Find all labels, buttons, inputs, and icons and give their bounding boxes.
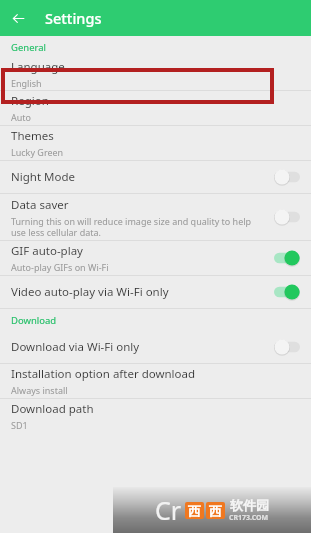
staticText: Download via Wi-Fi only xyxy=(11,339,140,355)
staticText: 软件园 xyxy=(230,497,269,513)
staticText: Download path xyxy=(11,401,94,417)
button[interactable]: Installation option after download xyxy=(0,364,311,398)
staticText: Auto-play GIFs on Wi-Fi xyxy=(11,261,109,273)
staticText: Data saver xyxy=(11,197,69,213)
staticText: Settings xyxy=(45,8,102,28)
button[interactable]: Themes xyxy=(0,126,311,160)
staticText: Lucky Green xyxy=(11,146,64,158)
button[interactable]: Toggle off xyxy=(274,169,300,185)
button[interactable]: Toggle on xyxy=(274,284,300,300)
button[interactable]: Back xyxy=(0,0,36,36)
staticText: SD1 xyxy=(11,419,28,431)
staticText: Auto xyxy=(11,111,32,123)
button[interactable]: Night Mode xyxy=(0,161,311,193)
button[interactable] xyxy=(3,70,272,102)
button[interactable]: Region xyxy=(0,91,311,125)
staticText: Download xyxy=(11,314,57,327)
staticText: General xyxy=(11,41,47,54)
staticText: Cr xyxy=(155,493,182,527)
staticText: Installation option after download xyxy=(11,366,196,382)
button[interactable]: Language xyxy=(0,58,311,90)
button[interactable]: Download via Wi-Fi only xyxy=(0,331,311,363)
staticText: Always install xyxy=(11,384,68,396)
button[interactable]: GIF auto-play xyxy=(0,241,311,275)
staticText: Night Mode xyxy=(11,169,75,185)
button[interactable]: Download path xyxy=(0,399,311,433)
staticText: Video auto-play via Wi-Fi only xyxy=(11,284,169,300)
staticText: Themes xyxy=(11,128,54,144)
staticText: 西 xyxy=(188,503,201,519)
button[interactable]: Data saver xyxy=(0,194,311,240)
button[interactable]: Toggle on xyxy=(274,250,300,266)
staticText: Language xyxy=(11,59,65,75)
staticText: CR173.COM xyxy=(229,513,269,523)
button[interactable]: Toggle off xyxy=(274,339,300,355)
staticText: GIF auto-play xyxy=(11,243,83,259)
staticText: Region xyxy=(11,93,49,109)
staticText: 西 xyxy=(209,503,222,519)
staticText: Turning this on will reduce image size a… xyxy=(11,215,266,238)
staticText: English xyxy=(11,77,42,89)
button[interactable]: Video auto-play via Wi-Fi only xyxy=(0,276,311,308)
button[interactable]: Toggle off xyxy=(274,209,300,225)
